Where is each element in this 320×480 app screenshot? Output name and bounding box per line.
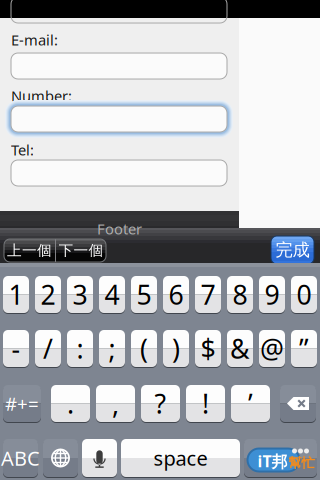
staticText: 7 bbox=[200, 277, 215, 312]
staticText: 1 bbox=[8, 277, 23, 312]
staticText: 4 bbox=[104, 277, 119, 312]
button[interactable]: Dictate bbox=[82, 439, 117, 477]
button[interactable]: 4 bbox=[99, 276, 125, 313]
staticText: Tel: bbox=[11, 140, 34, 159]
button[interactable]: 9 bbox=[259, 276, 285, 313]
staticText: . bbox=[67, 386, 74, 421]
button[interactable]: 3 bbox=[67, 276, 93, 313]
button[interactable]: ” bbox=[291, 330, 317, 367]
staticText: 幫忙 bbox=[288, 455, 314, 471]
button[interactable]: ! bbox=[186, 385, 225, 422]
staticText: - bbox=[11, 331, 20, 366]
staticText: iT邦 bbox=[257, 450, 287, 472]
staticText: 上一個 bbox=[7, 241, 52, 259]
staticText: , bbox=[112, 386, 119, 421]
staticText: ABC bbox=[1, 445, 40, 471]
staticText: 2 bbox=[40, 277, 55, 312]
staticText: space bbox=[153, 445, 207, 471]
button[interactable]: $ bbox=[195, 330, 221, 367]
button[interactable]: 5 bbox=[131, 276, 157, 313]
button[interactable]: Next keyboard bbox=[43, 439, 78, 477]
button[interactable]: Delete bbox=[280, 385, 316, 422]
staticText: 3 bbox=[72, 277, 87, 312]
button[interactable]: 完成 bbox=[271, 236, 314, 264]
button[interactable]: . bbox=[51, 385, 90, 422]
staticText: $ bbox=[200, 331, 215, 366]
button[interactable]: Return bbox=[244, 439, 317, 477]
button[interactable]: 1 bbox=[3, 276, 29, 313]
staticText: Footer bbox=[97, 219, 142, 238]
button[interactable]: ABC bbox=[3, 439, 38, 477]
staticText: 9 bbox=[264, 277, 279, 312]
button[interactable]: - bbox=[3, 330, 29, 367]
staticText: E-mail: bbox=[11, 30, 58, 49]
button[interactable]: space bbox=[121, 439, 240, 477]
button[interactable]: ( bbox=[131, 330, 157, 367]
staticText: 6 bbox=[168, 277, 183, 312]
staticText: #+= bbox=[5, 391, 39, 416]
button[interactable]: @ bbox=[259, 330, 285, 367]
button[interactable]: 6 bbox=[163, 276, 189, 313]
staticText: ” bbox=[299, 331, 309, 366]
staticText: 完成 bbox=[275, 239, 309, 261]
staticText: @ bbox=[260, 331, 284, 366]
button[interactable]: ’ bbox=[231, 385, 270, 422]
button[interactable]: 2 bbox=[35, 276, 61, 313]
staticText: / bbox=[43, 331, 53, 366]
staticText: ( bbox=[140, 331, 148, 366]
staticText: : bbox=[76, 331, 83, 366]
button[interactable]: ) bbox=[163, 330, 189, 367]
staticText: ) bbox=[172, 331, 180, 366]
staticText: ? bbox=[154, 386, 166, 421]
button[interactable]: & bbox=[227, 330, 253, 367]
button[interactable]: : bbox=[67, 330, 93, 367]
button[interactable]: , bbox=[96, 385, 135, 422]
staticText: ; bbox=[108, 331, 115, 366]
staticText: 0 bbox=[296, 277, 311, 312]
button[interactable]: #+= bbox=[3, 385, 41, 422]
button[interactable]: 8 bbox=[227, 276, 253, 313]
staticText: ’ bbox=[248, 386, 253, 421]
staticText: 下一個 bbox=[58, 241, 103, 259]
button[interactable]: 上一個 bbox=[4, 239, 55, 262]
button[interactable]: ; bbox=[99, 330, 125, 367]
button[interactable]: ? bbox=[141, 385, 180, 422]
button[interactable]: 0 bbox=[291, 276, 317, 313]
staticText: ! bbox=[202, 386, 209, 421]
staticText: Number: bbox=[11, 86, 72, 105]
button[interactable]: 下一個 bbox=[56, 239, 106, 262]
staticText: 8 bbox=[232, 277, 247, 312]
button[interactable]: 7 bbox=[195, 276, 221, 313]
button[interactable]: / bbox=[35, 330, 61, 367]
staticText: 5 bbox=[136, 277, 151, 312]
staticText: & bbox=[230, 331, 250, 366]
